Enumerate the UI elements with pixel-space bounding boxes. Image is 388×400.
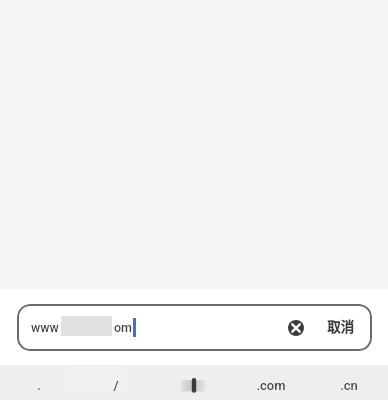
button[interactable]: www bbox=[17, 304, 372, 351]
staticText: .com bbox=[256, 378, 286, 393]
staticText: / bbox=[113, 378, 119, 393]
button[interactable]: 取消 bbox=[327, 304, 354, 349]
staticText: . bbox=[37, 378, 41, 393]
button[interactable]: Switch input language bbox=[154, 368, 232, 400]
button[interactable]: / bbox=[77, 368, 154, 400]
staticText: 取消 bbox=[327, 316, 354, 336]
staticText: www bbox=[31, 320, 59, 335]
button[interactable]: .cn bbox=[310, 368, 388, 400]
staticText: .cn bbox=[340, 378, 358, 393]
staticText: om bbox=[114, 320, 132, 335]
button[interactable]: .com bbox=[232, 368, 310, 400]
button[interactable]: . bbox=[0, 368, 77, 400]
button[interactable]: Clear text bbox=[281, 313, 311, 343]
